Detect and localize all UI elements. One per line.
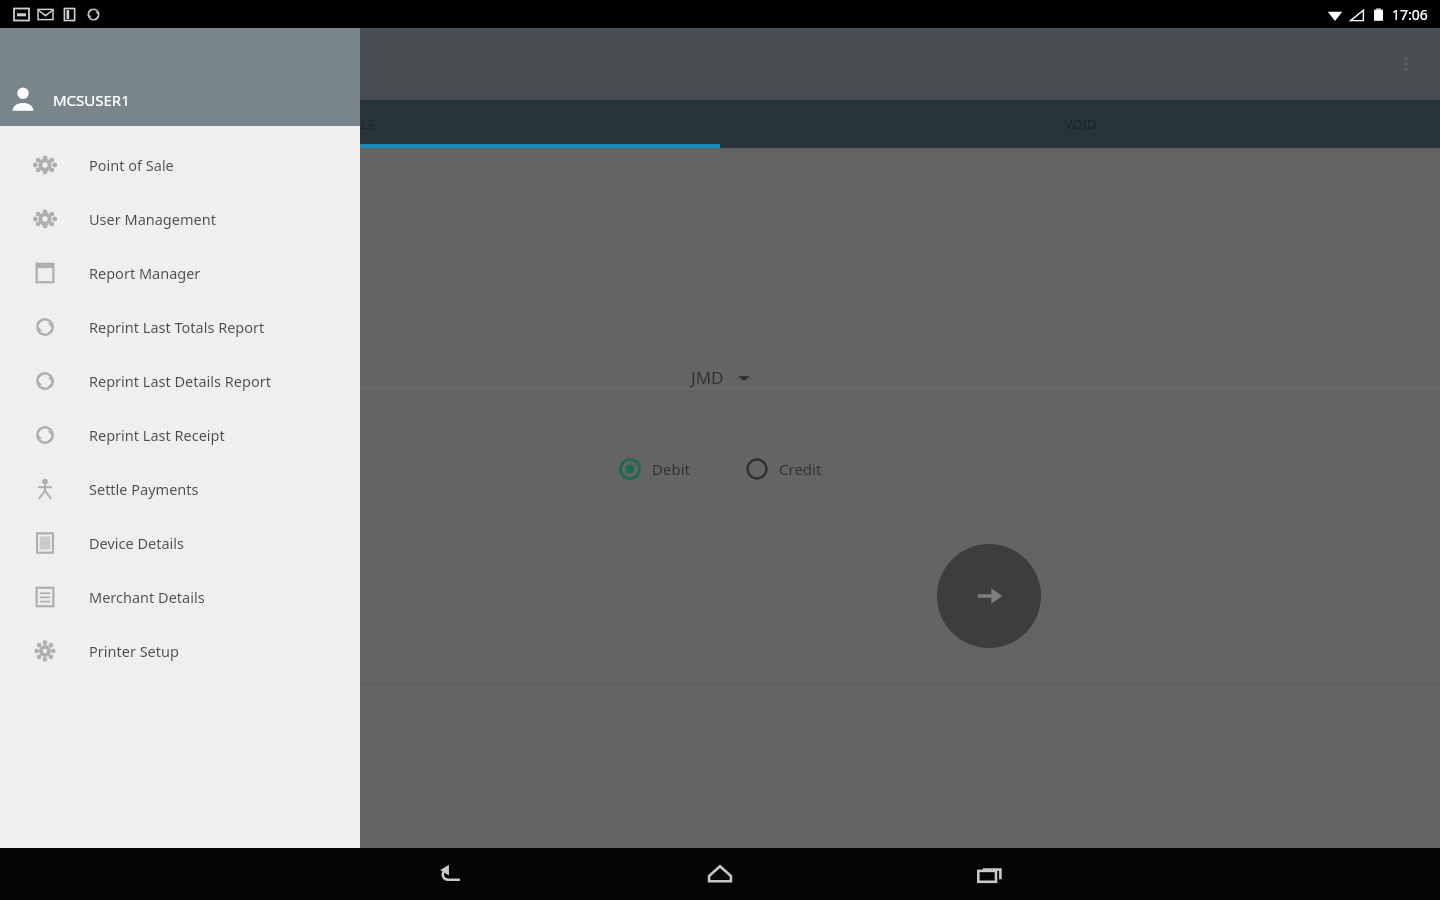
staticText: MCSUSER1 [53, 90, 130, 110]
button[interactable]: Next [937, 544, 1041, 648]
staticText: Merchant Details [89, 587, 205, 607]
button[interactable]: Report Manager [0, 246, 360, 300]
button[interactable]: Merchant Details [0, 570, 360, 624]
button[interactable]: MCSUSER1 [0, 28, 360, 126]
button[interactable]: Back [420, 851, 480, 897]
button[interactable]: Device Details [0, 516, 360, 570]
staticText: Report Manager [89, 263, 201, 283]
button[interactable]: SALE [0, 100, 720, 148]
staticText: User Management [89, 209, 216, 229]
staticText: VOID [1064, 115, 1097, 133]
button[interactable]: Reprint Last Totals Report [0, 300, 360, 354]
staticText: 17:06 [1392, 5, 1428, 24]
staticText: Reprint Last Totals Report [89, 317, 265, 337]
button[interactable]: Recents [960, 851, 1020, 897]
button[interactable]: Reprint Last Receipt [0, 408, 360, 462]
button[interactable]: Credit [746, 458, 822, 480]
button[interactable]: Debit [619, 458, 690, 480]
staticText: Point of Sale [89, 155, 174, 175]
staticText: Settle Payments [89, 479, 199, 499]
staticText: Printer Setup [89, 641, 179, 661]
staticText: JMD [691, 366, 724, 389]
button[interactable]: Point of Sale [0, 138, 360, 192]
staticText: Reprint Last Details Report [89, 371, 271, 391]
button[interactable]: Reprint Last Details Report [0, 354, 360, 408]
staticText: SALE [345, 115, 375, 133]
button[interactable]: Printer Setup [0, 624, 360, 678]
button[interactable]: Home [690, 851, 750, 897]
staticText: Device Details [89, 533, 185, 553]
staticText: Debit [652, 459, 690, 479]
staticText: Credit [779, 459, 822, 479]
button[interactable]: Settle Payments [0, 462, 360, 516]
button[interactable]: JMD [691, 366, 750, 389]
staticText: Reprint Last Receipt [89, 425, 225, 445]
button[interactable]: User Management [0, 192, 360, 246]
